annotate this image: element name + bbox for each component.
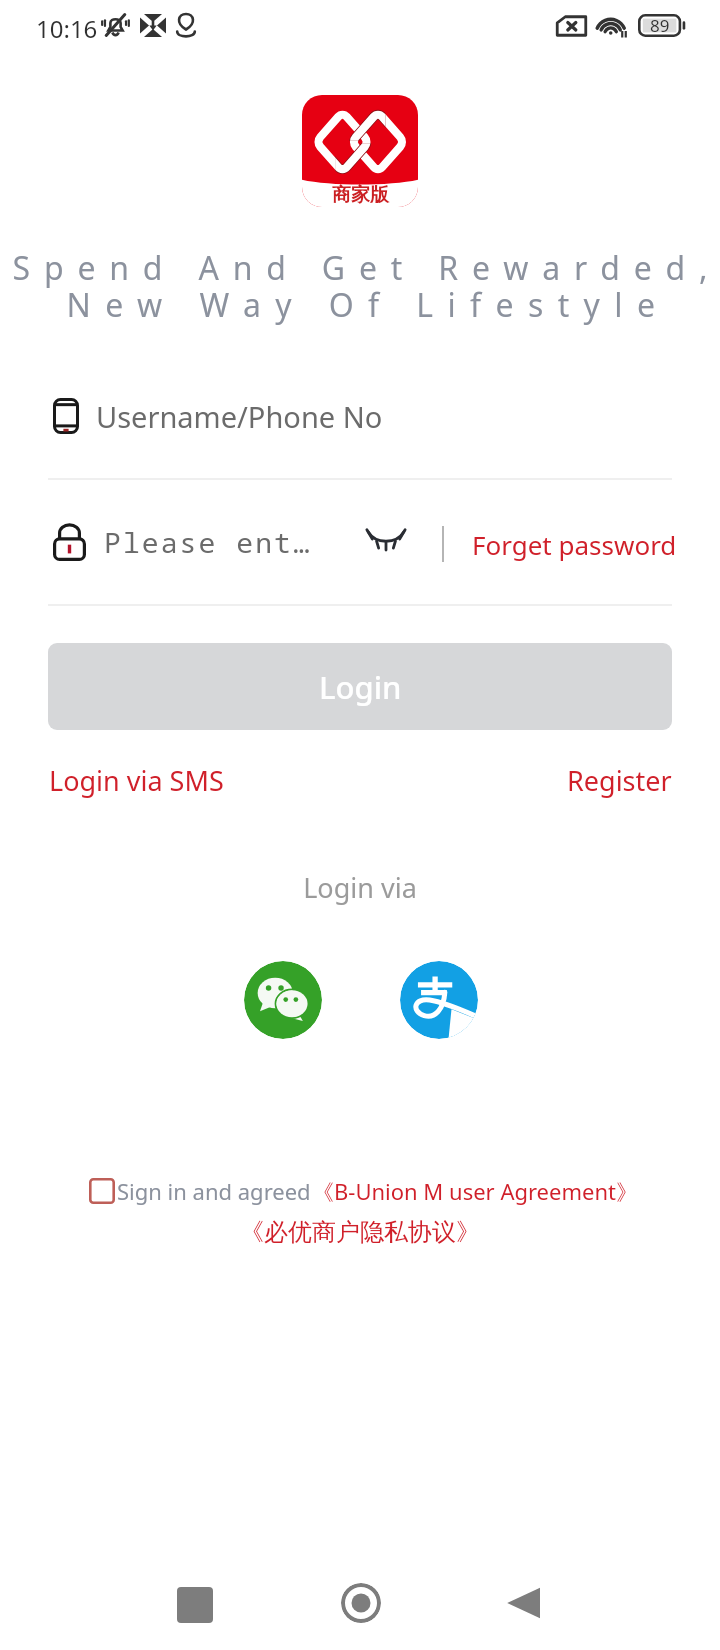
staticText: Username/Phone No (96, 397, 383, 436)
staticText: 商家版 (332, 183, 389, 207)
button[interactable]: Login with Alipay (400, 961, 478, 1039)
staticText: Register (567, 762, 672, 799)
button[interactable]: Recent apps (177, 1587, 213, 1623)
button[interactable]: Back (504, 1583, 544, 1623)
button[interactable]: Login via SMS (36, 757, 236, 803)
staticText: Login via (0, 869, 720, 906)
button[interactable]: Register (522, 757, 684, 803)
button[interactable]: Please ent… (48, 513, 348, 571)
button[interactable]: 《必优商户隐私协议》 (0, 1217, 720, 1247)
staticText: 89 (650, 14, 670, 37)
button[interactable]: 《B-Union M user Agreement》 (312, 1176, 638, 1206)
button[interactable]: Username/Phone No (48, 387, 672, 445)
staticText: Spend And Get Rewarded, (7, 246, 720, 290)
staticText: Login (319, 666, 402, 708)
staticText: Forget password (472, 527, 677, 562)
staticText: New Way Of Lifestyle (8, 283, 720, 327)
staticText: Login via SMS (49, 762, 224, 799)
button[interactable]: Agree to terms checkbox (89, 1178, 115, 1204)
button[interactable]: Forget password (460, 516, 684, 572)
staticText: Please ent… (104, 523, 312, 561)
button[interactable]: Home (341, 1583, 381, 1623)
button[interactable]: Login (48, 643, 672, 730)
staticText: Sign in and agreed (117, 1176, 311, 1206)
button[interactable]: Login with WeChat (244, 961, 322, 1039)
staticText: 10:16 (36, 12, 98, 45)
button[interactable]: Show password (355, 515, 417, 561)
